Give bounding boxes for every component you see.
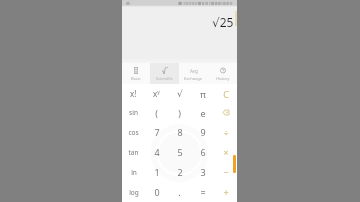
button[interactable]: Scientific [150,63,179,84]
button[interactable]: ln [122,162,145,182]
staticText: 0 [154,186,160,198]
button[interactable]: √ [168,84,191,103]
button[interactable]: Backspace [214,103,237,122]
button[interactable]: tan [122,142,145,162]
button[interactable]: . [168,182,191,202]
staticText: sin [129,108,138,117]
button[interactable]: − [214,162,237,182]
button[interactable]: x! [122,84,145,103]
staticText: 9 [200,126,206,138]
button[interactable]: 5 [168,142,191,162]
button[interactable]: π [191,84,214,103]
button[interactable]: × [214,142,237,162]
staticText: = [200,186,206,198]
button[interactable]: 2 [168,162,191,182]
button[interactable]: 0 [145,182,168,202]
button[interactable]: sin [122,103,145,122]
button[interactable]: + [214,182,237,202]
button[interactable]: 3 [191,162,214,182]
staticText: C [223,88,229,100]
staticText: Avg [190,68,199,74]
staticText: + [223,186,229,198]
button[interactable]: = [191,182,214,202]
staticText: √25 [212,14,234,30]
staticText: x! [130,88,137,99]
staticText: ln [131,168,137,177]
staticText: 2 [177,166,183,178]
button[interactable]: cos [122,122,145,142]
button[interactable]: Avg [179,63,208,84]
staticText: 5 [177,146,183,158]
button[interactable]: 4 [145,142,168,162]
staticText: tan [128,148,139,157]
staticText: ÷ [223,126,229,138]
staticText: Basic [131,76,141,81]
staticText: 8 [177,126,183,138]
other: Backspace [223,110,229,115]
button[interactable]: C [214,84,237,103]
staticText: . [178,186,181,198]
staticText: xy [153,88,160,99]
button[interactable]: 8 [168,122,191,142]
button[interactable]: ) [168,103,191,122]
button[interactable]: 7 [145,122,168,142]
button[interactable]: 1 [145,162,168,182]
staticText: Exchange [184,76,203,81]
staticText: 3 [200,166,206,178]
staticText: 6 [200,146,206,158]
button[interactable]: History [208,63,237,84]
button[interactable]: ÷ [214,122,237,142]
staticText: ) [178,107,181,119]
staticText: π [200,88,206,100]
staticText: History [216,76,230,81]
staticText: × [223,146,229,158]
staticText: ( [155,107,158,119]
staticText: − [223,166,229,178]
staticText: cos [128,128,139,137]
staticText: e [200,107,206,119]
button[interactable]: log [122,182,145,202]
button[interactable]: 9 [191,122,214,142]
staticText: √ [177,89,183,99]
staticText: 7 [154,126,160,138]
button[interactable]: ( [145,103,168,122]
button[interactable]: 6 [191,142,214,162]
staticText: log [129,188,139,197]
button[interactable]: xy [145,84,168,103]
button[interactable]: e [191,103,214,122]
staticText: 1 [154,166,160,178]
staticText: 4 [154,146,160,158]
staticText: Scientific [156,76,173,81]
button[interactable]: Basic [122,63,150,84]
